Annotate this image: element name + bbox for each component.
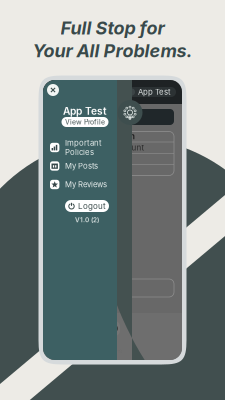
staticText: App Test bbox=[63, 105, 107, 117]
button[interactable]: Logout bbox=[65, 200, 109, 212]
staticText: Conversion bbox=[61, 112, 107, 122]
staticText: Account bbox=[102, 348, 122, 354]
button[interactable]: View Profile bbox=[61, 117, 108, 127]
button[interactable]: My Posts bbox=[50, 159, 124, 172]
staticText: View Profile bbox=[65, 118, 105, 126]
staticText: My Reviews bbox=[65, 180, 107, 189]
staticText: Logout bbox=[78, 201, 106, 211]
button[interactable]: My Reviews bbox=[50, 178, 124, 191]
button[interactable]: Dashboard bbox=[103, 319, 122, 338]
staticText: App Test bbox=[138, 87, 171, 97]
button[interactable]: Account bbox=[95, 340, 129, 354]
staticText: My Posts bbox=[65, 161, 98, 171]
staticText: Important Policies bbox=[65, 138, 102, 157]
staticText: New User Count bbox=[80, 143, 144, 153]
button[interactable]: App Test bbox=[126, 87, 176, 97]
staticText: V1.0 (2) bbox=[75, 216, 99, 224]
staticText: Full Stop for bbox=[60, 17, 164, 39]
button[interactable]: Important Policies bbox=[50, 141, 124, 154]
staticText: Conversion bbox=[90, 132, 135, 141]
button[interactable]: Close menu bbox=[45, 82, 61, 98]
staticText: Your All Problems. bbox=[32, 40, 192, 62]
